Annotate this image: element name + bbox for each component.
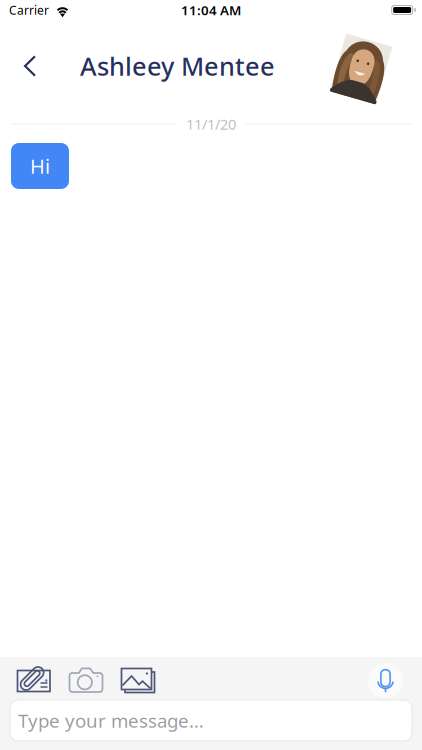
- button[interactable]: Type your message…: [10, 700, 412, 741]
- staticText: 11/1/20: [186, 114, 236, 134]
- staticText: 11:04 AM: [181, 1, 241, 19]
- staticText: Type your message…: [18, 708, 204, 733]
- button[interactable]: Camera: [60, 666, 112, 695]
- button[interactable]: Photos: [112, 666, 164, 695]
- button[interactable]: Back: [9, 44, 51, 88]
- staticText: Hi: [30, 153, 50, 179]
- button[interactable]: Record voice message: [368, 663, 403, 698]
- staticText: Ashleey Mentee: [80, 49, 275, 83]
- button[interactable]: Attach file: [8, 665, 60, 695]
- staticText: Carrier: [9, 2, 49, 18]
- button[interactable]: Profile photo: [325, 33, 397, 105]
